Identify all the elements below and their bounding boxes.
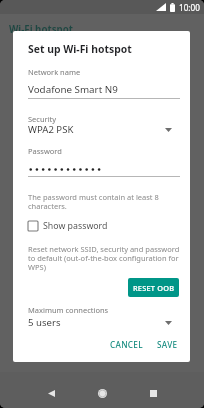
button[interactable]: Show password [25,218,108,234]
button[interactable]: RESET OOB [128,278,179,297]
staticText: Network name [28,67,81,77]
button[interactable]: WPA2 PSK [28,123,172,136]
staticText: SAVE [157,339,178,350]
staticText: CANCEL [110,339,143,350]
staticText: Security [28,114,57,124]
button[interactable]: 5 users [28,316,172,329]
staticText: RESET OOB [133,283,175,293]
staticText: Maximum connections [28,305,109,315]
staticText: Vodafone Smart N9 [28,83,118,96]
staticText: Password [28,146,62,156]
button[interactable]: Back [33,375,69,408]
button[interactable]: Home [84,375,120,408]
staticText: The password must contain at least 8 cha… [28,192,170,211]
staticText: 10:00 [179,2,200,13]
button[interactable]: Recent apps [135,375,171,408]
staticText: WPA2 PSK [28,123,74,136]
button[interactable]: SAVE [151,335,184,354]
staticText: Reset network SSID, security and passwor… [28,244,180,272]
staticText: Wi-Fi hotspot [9,23,73,36]
staticText: Set up Wi-Fi hotspot [28,42,132,56]
staticText: 5 users [28,316,61,329]
button[interactable]: CANCEL [104,335,149,354]
staticText: Show password [43,220,108,232]
